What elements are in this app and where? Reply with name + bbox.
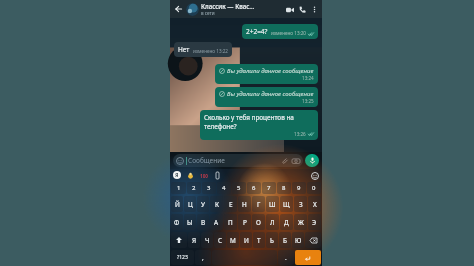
staticText: И [244, 236, 249, 245]
button[interactable]: Ж [294, 214, 307, 230]
staticText: Вы удалили данное сообщение [227, 67, 314, 75]
staticText: 4 [222, 184, 226, 192]
button[interactable]: Ю [292, 232, 304, 248]
button[interactable]: Voice call [296, 3, 309, 16]
button[interactable]: Классик — Квас... [201, 2, 283, 16]
button[interactable]: Emoji 100 [199, 171, 208, 180]
button[interactable]: 0 [307, 182, 321, 194]
staticText: Н [242, 200, 247, 209]
button[interactable]: Нет [174, 42, 232, 57]
button[interactable]: 3 [202, 182, 216, 194]
button[interactable]: К [210, 196, 223, 212]
button[interactable]: Й [171, 196, 183, 212]
button[interactable]: Numbers [171, 250, 194, 265]
button[interactable]: Clipboard [213, 171, 221, 179]
button[interactable]: Attach [280, 156, 289, 165]
button[interactable]: 2 [187, 182, 201, 194]
button[interactable]: Сколько у тебя процентов на телефоне? [200, 110, 318, 140]
button[interactable]: Shift [171, 232, 187, 248]
button[interactable]: Е [224, 196, 237, 212]
button[interactable]: Ч [201, 232, 213, 248]
staticText: Е [229, 200, 233, 209]
button[interactable]: У [197, 196, 209, 212]
button[interactable]: Х [308, 196, 321, 212]
button[interactable]: А [210, 214, 223, 230]
button[interactable]: Д [280, 214, 293, 230]
button[interactable]: Б [279, 232, 291, 248]
button[interactable]: Send [295, 250, 321, 265]
button[interactable]: 4 [217, 182, 231, 194]
button[interactable]: Р [238, 214, 251, 230]
button[interactable]: Ц [184, 196, 196, 212]
button[interactable]: П [224, 214, 237, 230]
button[interactable]: Period [278, 250, 294, 265]
staticText: Я [192, 236, 197, 245]
staticText: 0 [312, 184, 316, 192]
button[interactable]: Вы удалили данное сообщение [215, 64, 318, 84]
staticText: Ч [205, 236, 210, 245]
button[interactable]: Ш [266, 196, 279, 212]
button[interactable]: Emoji keyboard [310, 171, 319, 180]
button[interactable]: Г [252, 196, 265, 212]
button[interactable]: С [214, 232, 226, 248]
button[interactable]: Вы удалили данное сообщение [215, 87, 318, 107]
staticText: У [201, 200, 205, 209]
button[interactable]: Sticker [186, 171, 194, 179]
staticText: 13:24 [302, 75, 314, 81]
button[interactable]: З [294, 196, 307, 212]
staticText: 13:25 [302, 98, 314, 104]
button[interactable]: Ь [266, 232, 278, 248]
button[interactable]: 1 [171, 182, 186, 194]
button[interactable]: Camera [291, 156, 300, 165]
staticText: Ю [295, 236, 302, 245]
button[interactable]: Ф [171, 214, 183, 230]
button[interactable]: Т [253, 232, 265, 248]
button[interactable]: Profile photo [186, 3, 199, 16]
button[interactable]: О [252, 214, 265, 230]
button[interactable]: Emoji [175, 156, 184, 165]
button[interactable]: 6 [247, 182, 261, 194]
staticText: 100 [200, 173, 208, 179]
staticText: Классик — Квас... [201, 2, 255, 10]
button[interactable]: 9 [292, 182, 306, 194]
button[interactable]: Video call [283, 3, 296, 16]
button[interactable]: 2+2=4? [242, 24, 318, 39]
staticText: К [215, 200, 219, 209]
button[interactable]: 5 [232, 182, 246, 194]
button[interactable]: Backspace [305, 232, 321, 248]
button[interactable]: М [227, 232, 239, 248]
button[interactable]: Back [173, 3, 185, 15]
staticText: изменено 13:20 [271, 30, 306, 36]
staticText: Э [312, 218, 317, 227]
staticText: Д [284, 218, 289, 227]
staticText: Ц [188, 200, 193, 209]
button[interactable]: Voice message [305, 154, 319, 167]
staticText: ?123 [177, 254, 188, 261]
button[interactable]: 8 [277, 182, 291, 194]
button[interactable]: Щ [280, 196, 293, 212]
button[interactable]: В [197, 214, 209, 230]
staticText: Л [270, 218, 275, 227]
staticText: Ш [269, 200, 276, 209]
staticText: Т [257, 236, 261, 245]
staticText: Р [243, 218, 247, 227]
staticText: , [202, 253, 204, 262]
staticText: 7 [267, 184, 271, 192]
button[interactable]: Я [188, 232, 200, 248]
button[interactable]: 7 [262, 182, 276, 194]
button[interactable]: Comma [195, 250, 211, 265]
button[interactable]: Э [308, 214, 321, 230]
button[interactable]: Н [238, 196, 251, 212]
staticText: 3 [207, 184, 211, 192]
button[interactable]: Space [212, 250, 277, 265]
button[interactable]: Ы [184, 214, 196, 230]
button[interactable]: Л [266, 214, 279, 230]
button[interactable]: Language [173, 171, 181, 179]
button[interactable]: И [240, 232, 252, 248]
button[interactable]: Emoji [173, 154, 303, 167]
button[interactable]: More options [309, 4, 319, 14]
staticText: А [214, 218, 219, 227]
staticText: Ф [174, 218, 180, 227]
staticText: 2+2=4? [246, 27, 268, 36]
staticText: П [228, 218, 233, 227]
